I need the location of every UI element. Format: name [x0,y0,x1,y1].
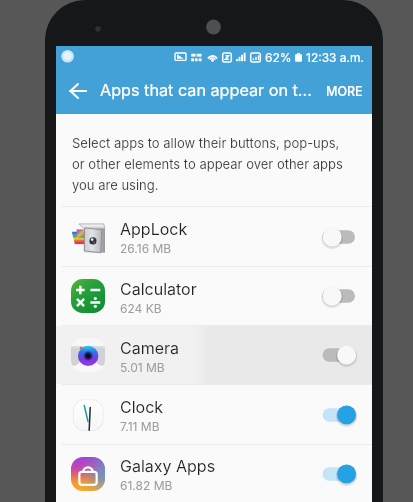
staticText: 61.82 MB [120,478,173,493]
button[interactable]: Camera [56,326,372,384]
button[interactable]: Navigate up [59,72,97,110]
staticText: 7.11 MB [120,419,160,434]
button[interactable]: AppLock permission switch [314,213,372,261]
button[interactable]: Calculator [56,267,372,325]
staticText: Galaxy Apps [120,456,216,475]
button[interactable]: Calculator permission switch [314,272,372,320]
button[interactable]: Camera permission switch [314,331,372,379]
button[interactable]: Clock permission switch [314,391,372,439]
button[interactable]: Clock [56,385,372,444]
staticText: Calculator [120,279,197,298]
staticText: 12:33 a.m. [306,50,365,65]
staticText: Camera [120,338,180,357]
button[interactable]: MORE [317,75,372,108]
button[interactable]: AppLock [56,207,372,266]
staticText: Clock [120,397,164,416]
staticText: Apps that can appear on t... [100,80,312,100]
button[interactable]: Galaxy Apps [56,445,372,502]
staticText: 5.01 MB [120,360,165,375]
staticText: 26.16 MB [120,241,172,256]
button[interactable]: Galaxy Apps permission switch [314,450,372,498]
staticText: 624 KB [120,301,162,316]
staticText: Select apps to allow their buttons, pop-… [72,135,343,193]
staticText: 62% [265,50,292,65]
staticText: MORE [326,84,363,99]
staticText: AppLock [120,219,188,238]
